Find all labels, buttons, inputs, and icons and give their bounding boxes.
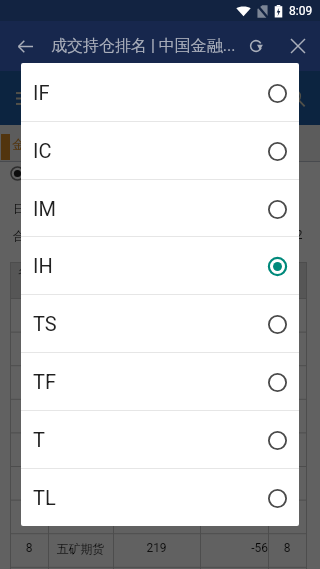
button[interactable]: IM — [21, 179, 299, 237]
staticText: 5 — [10, 440, 48, 454]
staticText: 6 — [10, 474, 48, 488]
button[interactable]: T — [21, 410, 299, 468]
button[interactable]: IF — [21, 63, 299, 121]
staticText: 五矿期货 — [48, 541, 113, 556]
staticText: IC — [33, 139, 268, 162]
staticText: 日期 — [13, 201, 37, 216]
staticText: 8 — [10, 541, 48, 555]
staticText: 1 — [10, 306, 48, 320]
staticText: 3 — [268, 373, 306, 387]
staticText: 4,207 — [113, 407, 200, 421]
staticText: IF — [33, 81, 268, 104]
staticText: 成交持仓排名 | 中国金融... — [51, 36, 237, 56]
button[interactable]: Back — [1, 22, 49, 70]
staticText: 中信期货 — [48, 340, 113, 355]
staticText: 金融 — [12, 136, 38, 152]
staticText: TL — [33, 486, 268, 509]
staticText: 合约 — [13, 228, 37, 243]
staticText: 名次 — [10, 264, 48, 278]
staticText: 5 — [268, 440, 306, 454]
staticText: -56 — [200, 541, 268, 555]
staticText: 2 — [10, 340, 48, 354]
staticText: 2 — [268, 340, 306, 354]
staticText: 812 — [200, 340, 268, 354]
staticText: 海通期货 — [48, 373, 113, 388]
button[interactable]: TS — [21, 294, 299, 352]
staticText: TS — [33, 312, 268, 335]
staticText: 7 — [268, 508, 306, 522]
staticText: TF — [33, 370, 268, 393]
staticText: 会员简称 — [48, 264, 113, 278]
staticText: 8:09 — [289, 4, 313, 18]
staticText: 4 — [10, 407, 48, 421]
button[interactable]: TL — [21, 468, 299, 526]
staticText: IH — [33, 254, 268, 277]
staticText: 3 — [10, 373, 48, 387]
button[interactable]: Close — [280, 28, 316, 64]
staticText: 4 — [268, 407, 306, 421]
staticText: 6 — [268, 474, 306, 488]
staticText: 219 — [113, 541, 200, 555]
staticText: 银河期货 — [48, 407, 113, 422]
staticText: 名次 — [268, 264, 306, 278]
button[interactable]: IC — [21, 121, 299, 179]
staticText: 8 — [268, 541, 306, 555]
staticText: IM — [33, 197, 268, 220]
button[interactable]: IH — [21, 236, 299, 294]
staticText: 2022-08-22 — [242, 228, 303, 242]
button[interactable]: Refresh — [238, 28, 274, 64]
staticText: 156 — [200, 407, 268, 421]
staticText: T — [33, 428, 268, 451]
staticText: 6,534 — [113, 340, 200, 354]
staticText: 7 — [10, 508, 48, 522]
staticText: 1 — [268, 306, 306, 320]
staticText: 国泰君安 — [48, 306, 113, 321]
button[interactable]: TF — [21, 352, 299, 410]
